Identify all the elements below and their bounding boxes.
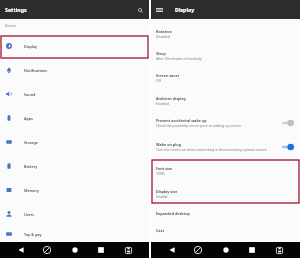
staticText: Storage [24, 140, 38, 145]
staticText: Sound [24, 92, 36, 97]
button[interactable]: Do not disturb [190, 242, 206, 258]
staticText: Enabled [156, 101, 169, 106]
staticText: Ambient display [156, 96, 186, 101]
staticText: Smaller [156, 194, 168, 199]
button[interactable]: Prevent accidental wake up [151, 112, 300, 134]
staticText: Disabled [156, 34, 170, 39]
staticText: Turn the screen on when connecting or di… [156, 147, 267, 152]
button[interactable]: Expanded desktop [151, 205, 300, 222]
button[interactable]: Recents [244, 242, 260, 258]
staticText: Check the proximity sensor prior to waki… [156, 123, 241, 128]
button[interactable]: Wake on plug [151, 134, 300, 159]
button[interactable]: Toggle [282, 143, 294, 151]
button[interactable]: Do not disturb [39, 242, 55, 258]
staticText: Expanded desktop [156, 211, 190, 216]
button[interactable]: Users [0, 202, 149, 226]
button[interactable]: Search [135, 5, 145, 15]
button[interactable]: Font size [151, 159, 300, 183]
button[interactable]: Sound [0, 82, 149, 106]
staticText: Device [5, 23, 17, 28]
button[interactable]: Back [13, 242, 29, 258]
staticText: Battery [24, 164, 38, 169]
button[interactable]: Apps [0, 106, 149, 130]
staticText: Memory [24, 188, 40, 193]
button[interactable]: Display size [151, 183, 300, 205]
button[interactable]: Screenshot [120, 242, 136, 258]
button[interactable]: Storage [0, 130, 149, 154]
staticText: Rotation [156, 29, 172, 34]
staticText: Off [156, 78, 161, 83]
button[interactable]: Recents [93, 242, 109, 258]
staticText: Font size [156, 166, 173, 171]
staticText: Sleep [156, 51, 166, 56]
button[interactable]: Back [164, 242, 180, 258]
staticText: Prevent accidental wake up [156, 118, 207, 123]
staticText: Wake on plug [156, 142, 181, 147]
button[interactable]: Rotation [151, 23, 300, 45]
staticText: Settings [5, 6, 27, 13]
staticText: Display [175, 6, 195, 13]
button[interactable]: Sleep [151, 45, 300, 67]
button[interactable]: Screenshot [271, 242, 287, 258]
button[interactable]: Cast [151, 222, 300, 239]
staticText: Apps [24, 116, 33, 121]
staticText: Cast [156, 228, 165, 233]
staticText: Display size [156, 189, 178, 194]
button[interactable]: Tap & pay [0, 226, 149, 242]
button[interactable]: Toggle [282, 119, 294, 127]
staticText: Screen saver [156, 73, 180, 78]
button[interactable]: Menu [154, 4, 165, 15]
button[interactable]: Ambient display [151, 89, 300, 112]
button[interactable]: Screen saver [151, 67, 300, 89]
button[interactable]: Home [218, 242, 234, 258]
staticText: Notifications [24, 68, 48, 73]
staticText: Tap & pay [24, 232, 42, 237]
staticText: After 30 minutes of inactivity [156, 56, 202, 61]
button[interactable]: Notifications [0, 58, 149, 82]
staticText: Users [24, 212, 35, 217]
button[interactable]: Home [67, 242, 83, 258]
staticText: 100% [156, 171, 165, 176]
button[interactable]: Memory [0, 178, 149, 202]
staticText: Display [24, 44, 38, 49]
button[interactable]: Battery [0, 154, 149, 178]
button[interactable]: Display [0, 34, 149, 58]
